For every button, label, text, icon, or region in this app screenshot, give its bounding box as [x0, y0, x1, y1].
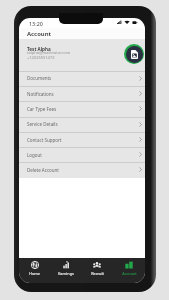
staticText: Account	[122, 271, 137, 276]
staticText: Contact Support	[27, 137, 62, 143]
button[interactable]	[19, 101, 145, 116]
button[interactable]: Earnings	[50, 258, 81, 283]
button[interactable]	[19, 132, 145, 147]
staticText: +12025551472	[27, 55, 55, 60]
staticText: Test Alpha	[27, 46, 51, 52]
staticText: Earnings	[58, 271, 74, 276]
button[interactable]: Home	[19, 258, 50, 283]
staticText: Account	[27, 30, 52, 38]
staticText: Notifications	[27, 91, 54, 97]
button[interactable]: Profile photo	[124, 44, 144, 64]
staticText: 13:20	[29, 20, 43, 27]
button[interactable]	[19, 117, 145, 132]
staticText: Home	[29, 271, 40, 276]
staticText: talpha@mailinator.com	[27, 50, 71, 55]
button[interactable]: Account	[113, 258, 145, 283]
staticText: Documents	[27, 75, 52, 81]
button[interactable]	[19, 86, 145, 101]
button[interactable]	[19, 147, 145, 162]
staticText: Car Type Fees	[27, 106, 57, 112]
staticText: Service Details	[27, 121, 58, 127]
button[interactable]	[19, 162, 145, 177]
button[interactable]	[19, 71, 145, 86]
button[interactable]	[19, 39, 145, 71]
staticText: Recruit	[91, 271, 104, 276]
staticText: Logout	[27, 152, 42, 158]
button[interactable]: Recruit	[81, 258, 113, 283]
staticText: Delete Account	[27, 167, 59, 173]
